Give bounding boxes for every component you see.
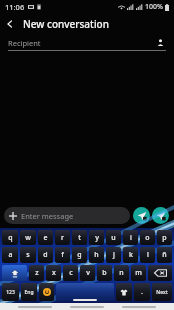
button[interactable]: j bbox=[106, 247, 121, 263]
staticText: n bbox=[119, 268, 124, 278]
staticText: h bbox=[94, 250, 99, 260]
button[interactable]: Choose contact bbox=[155, 37, 166, 48]
staticText: 100% bbox=[145, 2, 163, 12]
button[interactable] bbox=[122, 306, 156, 308]
button[interactable]: d bbox=[38, 247, 53, 263]
button[interactable]: u bbox=[106, 230, 121, 245]
button[interactable]: Backspace bbox=[148, 265, 172, 281]
button[interactable]: s bbox=[20, 247, 36, 263]
staticText: Eng bbox=[24, 289, 34, 296]
button[interactable]: k bbox=[123, 247, 138, 263]
button[interactable]: i bbox=[123, 230, 138, 245]
staticText: f bbox=[61, 250, 64, 260]
staticText: r bbox=[61, 233, 64, 243]
button[interactable]: ñ bbox=[157, 247, 172, 263]
button[interactable]: Send message bbox=[133, 207, 150, 224]
button[interactable]: Enter message bbox=[4, 207, 130, 224]
button[interactable]: v bbox=[80, 265, 95, 281]
button[interactable]: y bbox=[89, 230, 104, 245]
staticText: k bbox=[129, 250, 133, 260]
staticText: v bbox=[86, 268, 90, 278]
staticText: m bbox=[135, 268, 142, 278]
button[interactable]: Next bbox=[152, 283, 172, 301]
staticText: 123 bbox=[6, 289, 15, 296]
button[interactable]: b bbox=[97, 265, 112, 281]
staticText: b bbox=[102, 268, 107, 278]
staticText: w bbox=[25, 233, 31, 243]
button[interactable]: c bbox=[63, 265, 78, 281]
staticText: ñ bbox=[162, 250, 167, 260]
button[interactable]: e bbox=[38, 230, 53, 245]
button[interactable]: w bbox=[20, 230, 36, 245]
staticText: d bbox=[43, 250, 48, 260]
button[interactable]: m bbox=[131, 265, 146, 281]
staticText: y bbox=[95, 233, 99, 243]
button[interactable]: 123 bbox=[2, 283, 19, 301]
button[interactable]: Keyboard theme bbox=[116, 283, 132, 301]
staticText: u bbox=[111, 233, 116, 243]
button[interactable] bbox=[18, 306, 52, 308]
button[interactable]: g bbox=[72, 247, 87, 263]
button[interactable]: r bbox=[55, 230, 70, 245]
button[interactable]: f bbox=[55, 247, 70, 263]
staticText: 11:06 bbox=[5, 2, 25, 12]
button[interactable]: x bbox=[46, 265, 61, 281]
staticText: o bbox=[145, 233, 150, 243]
staticText: Recipient bbox=[8, 38, 41, 48]
staticText: Enter message bbox=[21, 211, 74, 221]
staticText: Next bbox=[156, 289, 168, 296]
staticText: g bbox=[77, 250, 82, 260]
button[interactable]: o bbox=[140, 230, 155, 245]
staticText: p bbox=[162, 233, 167, 243]
staticText: t bbox=[78, 233, 81, 243]
button[interactable]: . bbox=[134, 283, 150, 301]
button[interactable]: Space bbox=[56, 283, 114, 301]
staticText: j bbox=[113, 250, 115, 260]
staticText: a bbox=[8, 250, 13, 260]
staticText: e bbox=[43, 233, 48, 243]
button[interactable]: h bbox=[89, 247, 104, 263]
staticText: z bbox=[35, 268, 39, 278]
button[interactable]: Shift bbox=[2, 265, 27, 281]
button[interactable]: Emoji bbox=[39, 283, 54, 301]
staticText: s bbox=[26, 250, 30, 260]
button[interactable]: z bbox=[29, 265, 44, 281]
staticText: x bbox=[52, 268, 56, 278]
button[interactable]: q bbox=[2, 230, 18, 245]
staticText: l bbox=[147, 250, 149, 260]
button[interactable]: Back bbox=[0, 14, 19, 33]
button[interactable]: Eng bbox=[21, 283, 37, 301]
button[interactable] bbox=[70, 306, 104, 308]
button[interactable]: t bbox=[72, 230, 87, 245]
staticText: q bbox=[8, 233, 13, 243]
button[interactable]: p bbox=[157, 230, 172, 245]
staticText: . bbox=[141, 287, 143, 297]
button[interactable]: l bbox=[140, 247, 155, 263]
staticText: New conversation bbox=[23, 17, 109, 31]
button[interactable]: a bbox=[2, 247, 18, 263]
button[interactable]: Send as SMS bbox=[152, 207, 169, 224]
staticText: i bbox=[130, 233, 132, 243]
staticText: c bbox=[69, 268, 73, 278]
button[interactable]: n bbox=[114, 265, 129, 281]
